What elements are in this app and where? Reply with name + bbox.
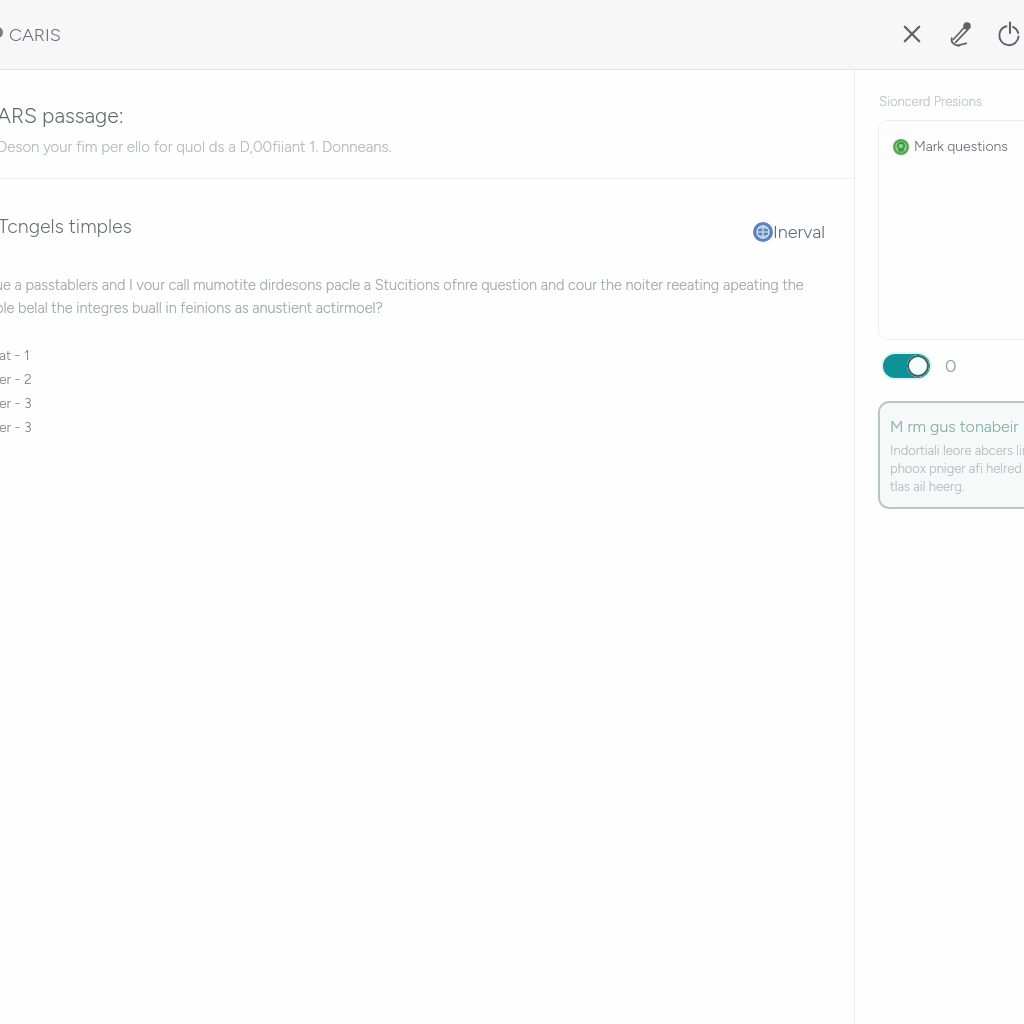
- button[interactable]: Reset: [988, 12, 1024, 56]
- button[interactable]: M rm gus tonabeir: [878, 401, 1024, 509]
- button[interactable]: Toggle: [881, 352, 932, 380]
- staticText: ler - 3: [0, 419, 32, 436]
- staticText: ler - 2: [0, 371, 32, 388]
- button[interactable]: ler - 3: [0, 415, 854, 439]
- staticText: ple belal the integres buall in feinions…: [0, 299, 383, 316]
- button[interactable]: Mark questions: [878, 120, 1024, 340]
- staticText: Indortiali leore abcers linfr phoox pnig…: [890, 443, 1024, 494]
- button[interactable]: Inerval: [753, 221, 826, 243]
- staticText: Sioncerd Presions: [879, 94, 982, 110]
- staticText: 0: [945, 355, 957, 377]
- staticText: ler - 3: [0, 395, 32, 412]
- staticText: M rm gus tonabeir: [890, 417, 1019, 436]
- button[interactable]: ler - 3: [0, 391, 854, 415]
- staticText: ue a passtablers and I vour call mumotit…: [0, 276, 804, 293]
- staticText: Tcngels timples: [0, 214, 132, 237]
- button[interactable]: Edit: [938, 12, 982, 56]
- staticText: Deson your fim per ello for quol ds a D,…: [0, 138, 392, 156]
- button[interactable]: CARIS: [0, 16, 70, 54]
- staticText: Inerval: [773, 221, 826, 243]
- staticText: ARS passage:: [0, 103, 124, 128]
- staticText: CARIS: [9, 24, 61, 46]
- button[interactable]: ler - 2: [0, 367, 854, 391]
- staticText: lat - 1: [0, 347, 30, 364]
- button[interactable]: Close: [890, 12, 934, 56]
- staticText: Mark questions: [914, 138, 1008, 155]
- button[interactable]: lat - 1: [0, 343, 854, 367]
